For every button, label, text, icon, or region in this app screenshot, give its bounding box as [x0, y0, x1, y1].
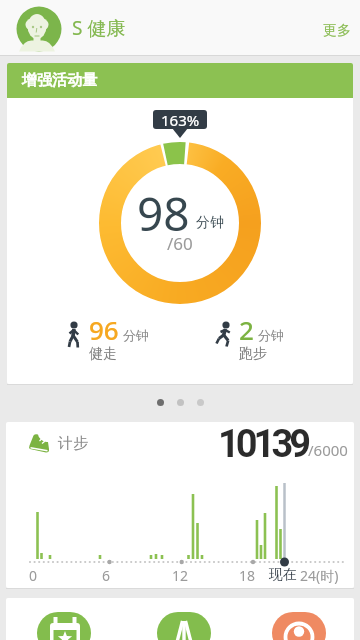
button[interactable]: S 健康	[0, 0, 360, 55]
staticText: 分钟	[196, 214, 224, 232]
button[interactable]	[272, 612, 326, 640]
staticText: 24(时)	[300, 566, 339, 585]
staticText: 6	[102, 566, 111, 585]
staticText: 12	[172, 566, 189, 585]
staticText: 分钟	[123, 327, 149, 343]
button[interactable]: 96	[65, 317, 149, 370]
staticText: 18	[239, 566, 256, 585]
staticText: 现在	[269, 566, 297, 584]
button[interactable]: 计步	[6, 422, 354, 588]
staticText: 0	[29, 566, 38, 585]
button[interactable]	[37, 612, 91, 640]
button[interactable]: 更多	[317, 16, 357, 46]
staticText: /60	[167, 232, 193, 255]
staticText: 增强活动量	[22, 71, 97, 90]
staticText: 分钟	[258, 327, 284, 343]
staticText: 2	[239, 312, 254, 347]
staticText: 98	[137, 182, 190, 245]
staticText: 10139	[218, 422, 308, 467]
staticText: 计步	[58, 434, 88, 453]
staticText: 跑步	[239, 345, 267, 363]
staticText: 更多	[323, 22, 351, 40]
staticText: 健走	[89, 345, 117, 363]
button[interactable]	[157, 612, 211, 640]
staticText: /6000	[308, 440, 348, 460]
staticText: 96	[89, 312, 119, 347]
staticText: S 健康	[72, 15, 126, 41]
staticText: 163%	[161, 110, 200, 129]
button[interactable]: 2	[215, 317, 284, 370]
button[interactable]: 增强活动量	[7, 63, 353, 98]
